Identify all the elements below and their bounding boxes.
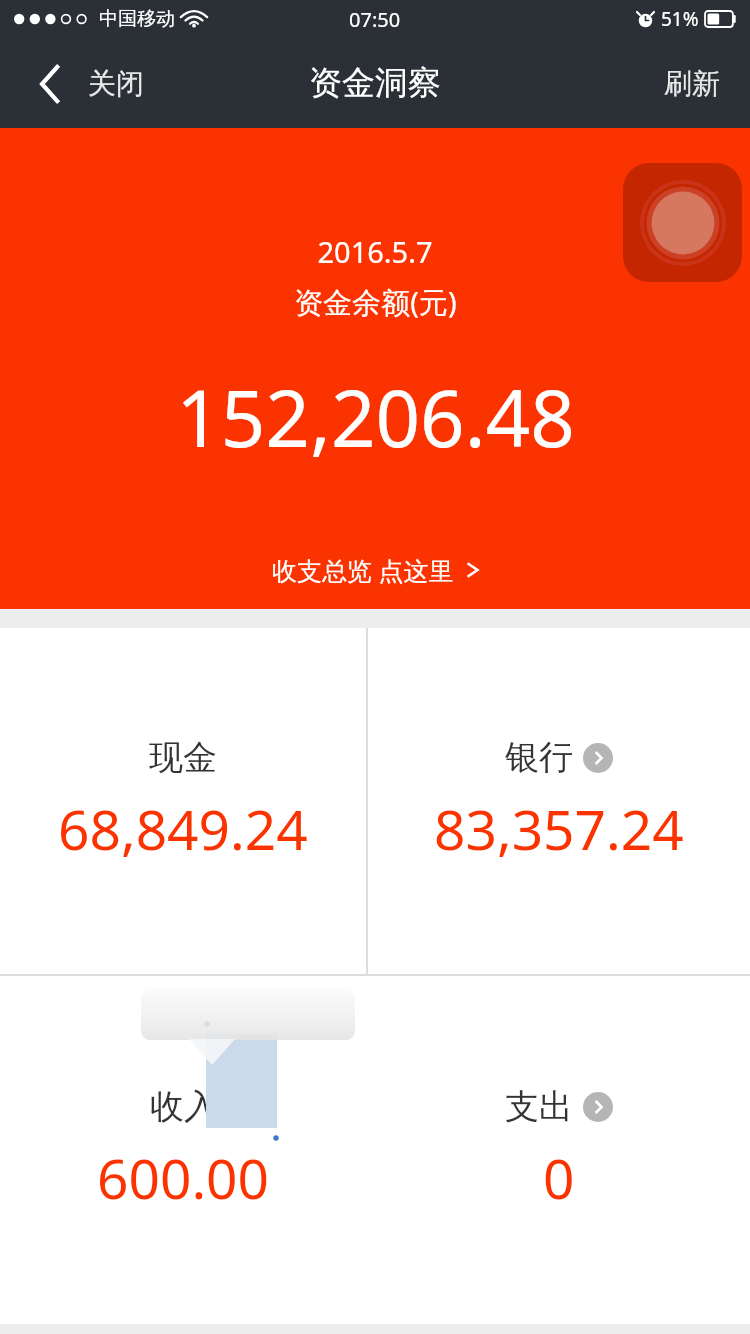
staticText: 51% bbox=[661, 6, 699, 32]
staticText: 2016.5.7 bbox=[317, 232, 433, 271]
button[interactable]: 收入 bbox=[0, 976, 366, 1324]
button[interactable]: 支出 bbox=[368, 976, 750, 1324]
button[interactable]: 关闭 bbox=[0, 48, 168, 119]
staticText: 资金余额(元) bbox=[294, 282, 457, 322]
button[interactable]: 复制 bbox=[141, 988, 355, 1040]
staticText: 07:50 bbox=[349, 6, 401, 33]
staticText: 刷新 bbox=[664, 66, 720, 101]
button[interactable]: 刷新 bbox=[634, 46, 750, 121]
button[interactable]: 现金 bbox=[0, 628, 366, 974]
staticText: 支出 bbox=[505, 1085, 573, 1128]
staticText: 资金洞察 bbox=[309, 62, 441, 104]
button[interactable]: 银行 bbox=[368, 628, 750, 974]
staticText: 0 bbox=[543, 1140, 575, 1215]
button[interactable]: 记账 bbox=[623, 163, 742, 282]
staticText: 中国移动 bbox=[99, 7, 175, 31]
staticText: 关闭 bbox=[88, 66, 144, 101]
staticText: 收入 bbox=[150, 1085, 218, 1128]
staticText: 银行 bbox=[505, 736, 573, 779]
staticText: 600.00 bbox=[97, 1140, 270, 1215]
staticText: 83,357.24 bbox=[434, 791, 684, 866]
staticText: 收支总览 点这里 bbox=[272, 553, 454, 587]
button[interactable]: 收支总览 点这里 bbox=[252, 545, 499, 595]
staticText: 68,849.24 bbox=[58, 791, 308, 866]
staticText: 152,206.48 bbox=[176, 364, 575, 470]
staticText: 现金 bbox=[149, 736, 217, 779]
